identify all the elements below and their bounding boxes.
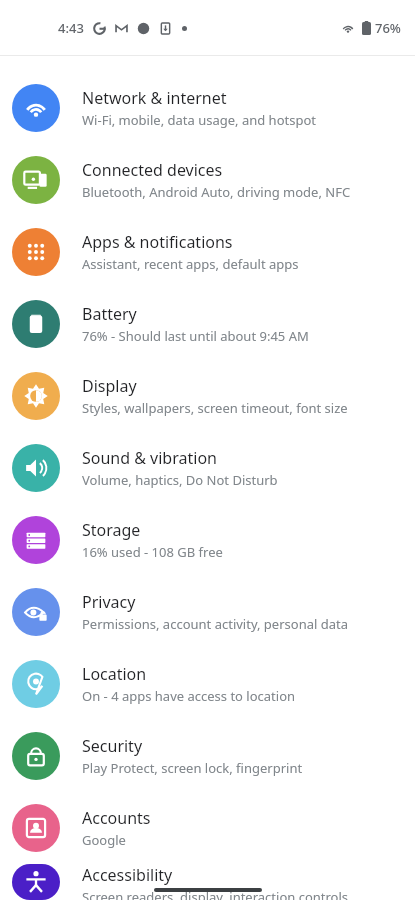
button[interactable]: Sound & vibration — [0, 432, 415, 504]
button[interactable]: Apps & notifications — [0, 216, 415, 288]
staticText: Battery — [82, 303, 137, 325]
staticText: Bluetooth, Android Auto, driving mode, N… — [82, 183, 351, 201]
staticText: Accounts — [82, 807, 151, 829]
button[interactable]: Accessibility — [0, 864, 415, 900]
button[interactable]: Location — [0, 648, 415, 720]
staticText: On - 4 apps have access to location — [82, 687, 296, 705]
button[interactable]: Network & internet — [0, 72, 415, 144]
staticText: 76% - Should last until about 9:45 AM — [82, 327, 309, 345]
staticText: Play Protect, screen lock, fingerprint — [82, 759, 303, 777]
staticText: Connected devices — [82, 159, 223, 181]
staticText: 76% — [375, 19, 401, 37]
staticText: 4:43 — [58, 19, 84, 37]
staticText: Volume, haptics, Do Not Disturb — [82, 471, 278, 489]
staticText: Location — [82, 663, 147, 685]
staticText: Security — [82, 735, 143, 757]
staticText: Network & internet — [82, 87, 227, 109]
staticText: Google — [82, 831, 126, 849]
staticText: Screen readers, display, interaction con… — [82, 888, 349, 900]
staticText: Storage — [82, 519, 141, 541]
button[interactable]: Privacy — [0, 576, 415, 648]
button[interactable]: Display — [0, 360, 415, 432]
staticText: Assistant, recent apps, default apps — [82, 255, 299, 273]
staticText: 16% used - 108 GB free — [82, 543, 223, 561]
staticText: Apps & notifications — [82, 231, 233, 253]
button[interactable]: Accounts — [0, 792, 415, 864]
staticText: Display — [82, 375, 137, 397]
staticText: Styles, wallpapers, screen timeout, font… — [82, 399, 348, 417]
staticText: Permissions, account activity, personal … — [82, 615, 348, 633]
button[interactable]: Battery — [0, 288, 415, 360]
button[interactable]: Security — [0, 720, 415, 792]
staticText: Privacy — [82, 591, 136, 613]
staticText: Accessibility — [82, 864, 173, 886]
staticText: Wi-Fi, mobile, data usage, and hotspot — [82, 111, 316, 129]
button[interactable]: Connected devices — [0, 144, 415, 216]
staticText: Sound & vibration — [82, 447, 217, 469]
button[interactable]: Storage — [0, 504, 415, 576]
